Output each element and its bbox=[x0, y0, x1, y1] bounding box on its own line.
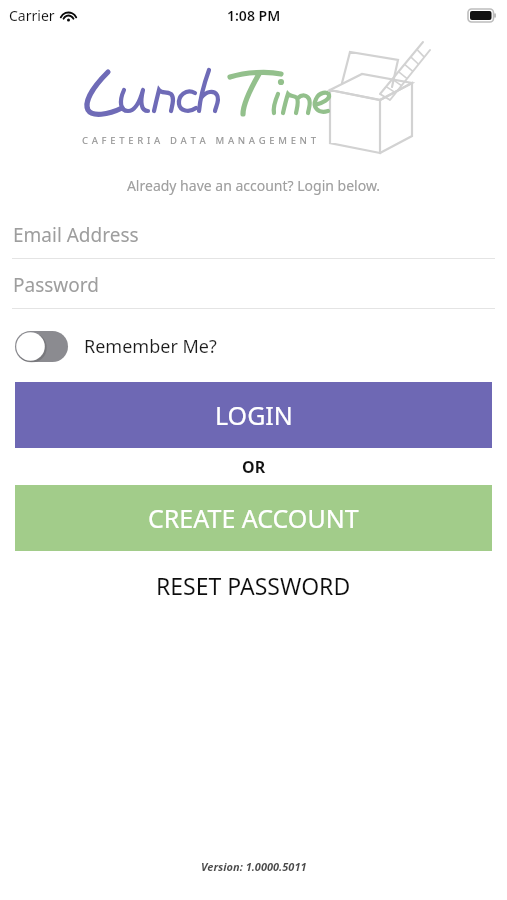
staticText: Remember Me? bbox=[84, 334, 217, 359]
button[interactable]: RESET PASSWORD bbox=[0, 551, 507, 619]
staticText: 1:08 PM bbox=[227, 6, 281, 25]
button[interactable]: LOGIN bbox=[15, 382, 492, 448]
button[interactable]: Email Address bbox=[0, 212, 507, 258]
staticText: Email Address bbox=[13, 222, 139, 248]
staticText: C A F E T E R I A D A T A M A N A G E M … bbox=[82, 134, 317, 147]
button[interactable]: CREATE ACCOUNT bbox=[15, 485, 492, 551]
staticText: Already have an account? Login below. bbox=[0, 176, 507, 195]
other: Remember Me toggle, off bbox=[15, 331, 68, 362]
staticText: RESET PASSWORD bbox=[156, 570, 351, 601]
staticText: LOGIN bbox=[215, 398, 293, 432]
button[interactable]: Remember Me toggle, off bbox=[15, 331, 217, 362]
staticText: Version: 1.0000.5011 bbox=[201, 859, 307, 874]
staticText: OR bbox=[242, 456, 266, 478]
button[interactable]: Password bbox=[0, 262, 507, 308]
staticText: Carrier bbox=[9, 6, 55, 25]
staticText: CREATE ACCOUNT bbox=[148, 501, 359, 535]
staticText: Password bbox=[13, 272, 99, 298]
